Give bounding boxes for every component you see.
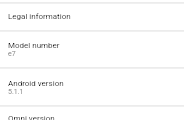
- button[interactable]: Legal information: [0, 2, 184, 30]
- button[interactable]: Omni version: [0, 104, 184, 120]
- staticText: Model number: [8, 41, 60, 50]
- button[interactable]: Model number: [0, 31, 184, 68]
- staticText: 5.1.1: [8, 88, 24, 96]
- staticText: e7: [8, 50, 16, 58]
- staticText: Legal information: [8, 12, 71, 21]
- button[interactable]: Android version: [0, 69, 184, 105]
- staticText: Android version: [8, 79, 64, 88]
- staticText: Omni version: [8, 114, 55, 120]
